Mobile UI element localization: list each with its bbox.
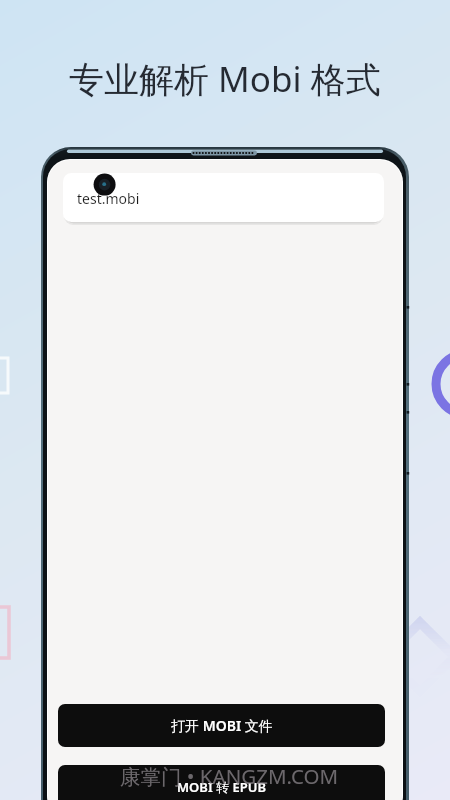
staticText: MOBI 转 EPUB — [177, 778, 266, 796]
staticText: 打开 MOBI 文件 — [171, 716, 273, 735]
staticText: test.mobi — [77, 189, 140, 208]
button[interactable]: test.mobi — [63, 173, 384, 222]
staticText: 专业解析 Mobi 格式 — [69, 55, 381, 103]
button[interactable]: MOBI 转 EPUB — [58, 765, 385, 800]
staticText: 康掌门 • KANGZM.COM — [120, 762, 339, 790]
button[interactable]: 打开 MOBI 文件 — [58, 704, 385, 747]
